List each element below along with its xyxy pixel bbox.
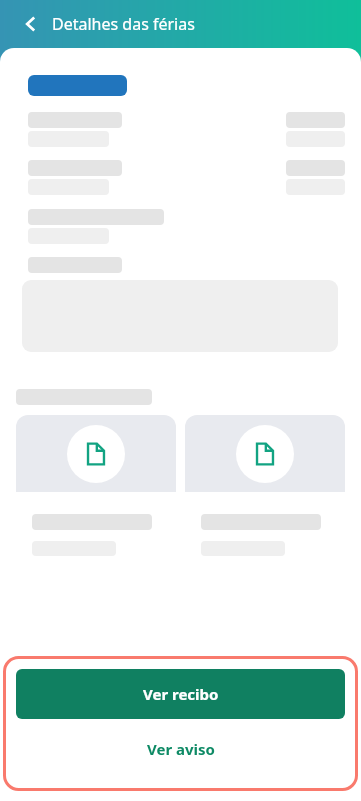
- button[interactable]: [16, 415, 176, 568]
- button[interactable]: Ver recibo: [16, 669, 345, 719]
- button[interactable]: [15, 65, 345, 360]
- staticText: Ver recibo: [143, 684, 219, 704]
- button[interactable]: Ver aviso: [16, 719, 345, 778]
- button[interactable]: [185, 415, 345, 568]
- button[interactable]: Voltar: [14, 7, 48, 41]
- staticText: Ver aviso: [147, 739, 215, 759]
- staticText: Detalhes das férias: [52, 13, 195, 35]
